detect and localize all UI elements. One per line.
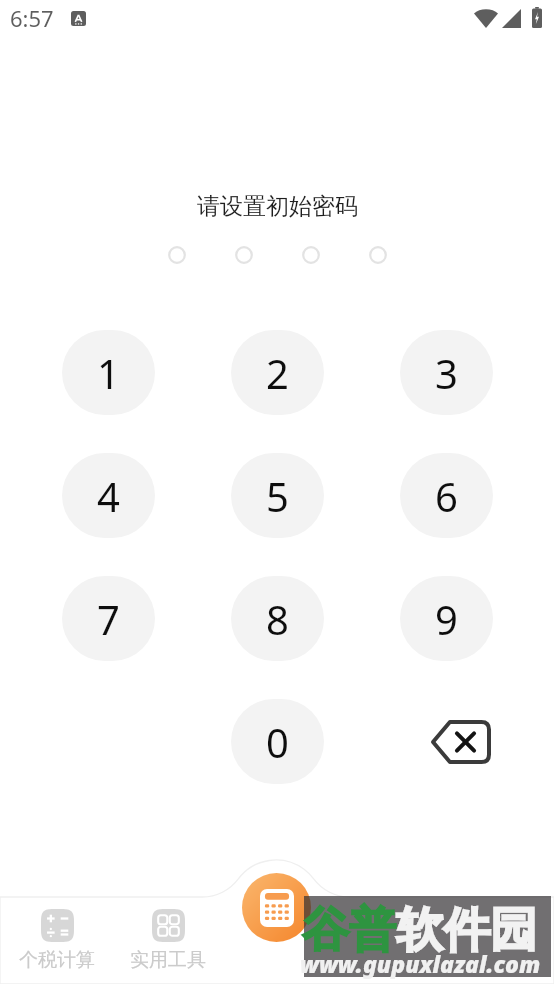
button[interactable]: Calculator (242, 873, 311, 942)
staticText: 6:57 (10, 3, 54, 33)
staticText: 3 (435, 346, 458, 400)
button[interactable]: 个税计算 (12, 900, 102, 984)
button[interactable]: 0 (231, 699, 324, 784)
staticText: 1 (97, 346, 120, 400)
staticText: 实用工具 (130, 948, 206, 972)
button[interactable]: Delete (400, 699, 493, 784)
staticText: 个税计算 (19, 948, 95, 972)
staticText: 谷普 (302, 901, 396, 960)
staticText: 7 (97, 592, 120, 646)
staticText: 9 (435, 592, 458, 646)
button[interactable]: 7 (62, 576, 155, 661)
staticText: 6 (435, 469, 458, 523)
button[interactable]: 4 (62, 453, 155, 538)
staticText: 软件园 (396, 901, 537, 960)
staticText: 请设置初始密码 (197, 192, 358, 221)
button[interactable]: 9 (400, 576, 493, 661)
button[interactable]: 实用工具 (123, 900, 213, 984)
staticText: 4 (97, 469, 120, 523)
button[interactable]: 6 (400, 453, 493, 538)
button[interactable]: 5 (231, 453, 324, 538)
button[interactable]: 8 (231, 576, 324, 661)
staticText: 8 (266, 592, 289, 646)
button[interactable]: 2 (231, 330, 324, 415)
button[interactable]: 1 (62, 330, 155, 415)
staticText: 0 (266, 715, 289, 769)
staticText: 2 (266, 346, 289, 400)
button[interactable]: 3 (400, 330, 493, 415)
staticText: 5 (266, 469, 289, 523)
staticText: www.gupuxlazal.com (300, 948, 541, 979)
